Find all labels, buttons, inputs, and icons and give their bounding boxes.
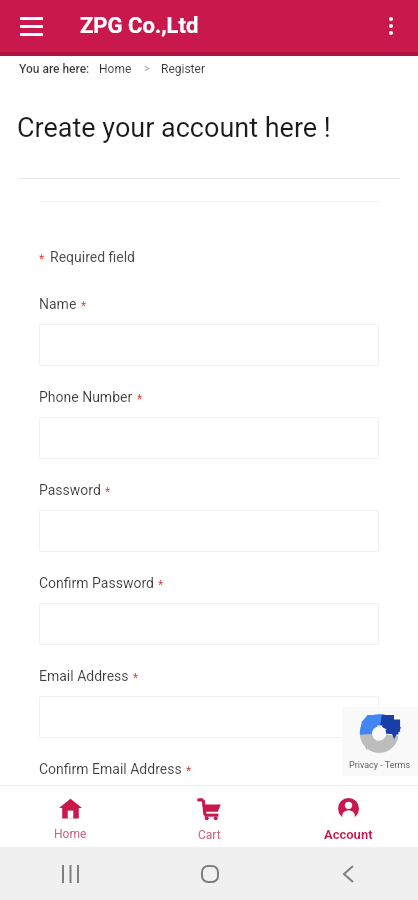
staticText: *: [105, 485, 111, 499]
button[interactable]: [39, 696, 379, 738]
staticText: *: [133, 671, 139, 685]
button[interactable]: [39, 603, 379, 645]
staticText: *: [186, 764, 192, 778]
staticText: Password: [39, 482, 101, 498]
staticText: *: [158, 578, 164, 592]
staticText: Phone Number: [39, 389, 133, 405]
staticText: Required field: [50, 249, 136, 265]
staticText: Account: [324, 827, 373, 842]
button[interactable]: Register: [161, 62, 205, 76]
staticText: *: [137, 392, 143, 406]
staticText: Privacy - Terms: [349, 760, 411, 771]
button[interactable]: More options: [373, 8, 409, 44]
button[interactable]: [39, 417, 379, 459]
button[interactable]: Home: [140, 847, 279, 900]
staticText: Email Address: [39, 668, 129, 684]
button[interactable]: Recent apps: [0, 847, 140, 900]
staticText: Confirm Password: [39, 575, 154, 591]
staticText: *: [81, 299, 87, 313]
staticText: Home: [54, 827, 87, 841]
button[interactable]: Cart: [140, 786, 279, 847]
staticText: Create your account here !: [17, 112, 331, 144]
staticText: Name: [39, 296, 77, 312]
button[interactable]: Back: [279, 847, 418, 900]
button[interactable]: Open navigation menu: [13, 8, 49, 44]
button[interactable]: [39, 510, 379, 552]
staticText: Cart: [198, 828, 221, 842]
staticText: >: [144, 62, 150, 75]
button[interactable]: reCAPTCHA: [342, 707, 418, 776]
staticText: You are here:: [19, 62, 90, 76]
button[interactable]: Home: [0, 786, 140, 847]
button[interactable]: Account: [279, 786, 418, 847]
button[interactable]: Home: [99, 62, 132, 76]
staticText: ZPG Co.,Ltd: [80, 13, 199, 39]
staticText: Confirm Email Address: [39, 761, 182, 777]
staticText: *: [39, 252, 45, 266]
button[interactable]: [39, 324, 379, 366]
